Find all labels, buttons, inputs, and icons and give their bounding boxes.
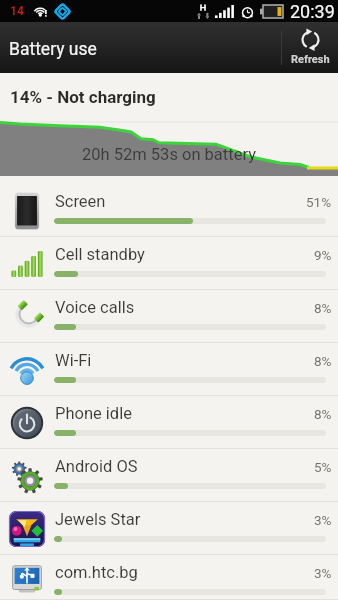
staticText: com.htc.bg (55, 563, 138, 582)
staticText: 14 (10, 4, 24, 18)
staticText: 5% (314, 459, 332, 475)
button[interactable]: Android OS (0, 449, 338, 502)
button[interactable]: Wi-Fi (0, 343, 338, 396)
staticText: Android OS (55, 457, 138, 476)
staticText: Battery use (9, 39, 97, 60)
staticText: Phone idle (55, 404, 132, 423)
button[interactable]: Refresh (282, 22, 338, 73)
staticText: 51% (306, 194, 332, 210)
button[interactable]: com.htc.bg (0, 555, 338, 600)
staticText: 8% (314, 406, 332, 422)
staticText: 3% (314, 565, 332, 581)
staticText: 20h 52m 53s on battery (82, 145, 256, 164)
staticText: Wi-Fi (55, 351, 92, 370)
button[interactable]: Phone idle (0, 396, 338, 449)
staticText: 20:39 (290, 1, 335, 22)
staticText: Screen (55, 192, 106, 211)
staticText: Cell standby (55, 245, 145, 264)
staticText: 8% (314, 353, 332, 369)
staticText: Refresh (291, 53, 330, 66)
button[interactable]: Screen (0, 184, 338, 237)
button[interactable]: Voice calls (0, 290, 338, 343)
staticText: Voice calls (55, 298, 135, 317)
staticText: 14% - Not charging (10, 87, 156, 107)
staticText: 9% (314, 247, 332, 263)
staticText: 3% (314, 512, 332, 528)
staticText: 8% (314, 300, 332, 316)
button[interactable]: Cell standby (0, 237, 338, 290)
staticText: Jewels Star (55, 510, 141, 529)
button[interactable]: Jewels Star (0, 502, 338, 555)
